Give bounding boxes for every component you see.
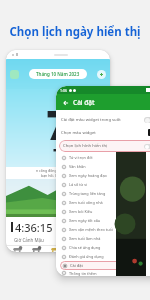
button[interactable]: Chọn lịch hình hiển thị xyxy=(59,140,150,152)
button[interactable]: Xem ngày hoàng đạo xyxy=(60,171,150,180)
button[interactable]: Con giáp xyxy=(12,246,23,252)
button[interactable]: Trùng tang liên táng xyxy=(60,189,150,198)
staticText: Xem tuổi xông nhà xyxy=(69,200,103,205)
button[interactable]: Xem tuổi làm nhà xyxy=(60,234,150,243)
staticText: Xem ngày hoàng đạo xyxy=(69,173,107,178)
button[interactable]: Lịch xyxy=(10,70,19,79)
staticText: Xem bói Kiều xyxy=(69,209,93,214)
button[interactable]: Chia sẻ ứng dụng xyxy=(60,243,150,252)
staticText: Tử vi trọn đời xyxy=(69,155,93,160)
button[interactable]: Con giáp xyxy=(50,246,61,252)
button[interactable]: Xem vận mệnh theo tuổi xyxy=(60,225,150,234)
staticText: bạn hối. lợp điều hay xyxy=(41,173,76,178)
button[interactable]: Xem tuổi xông nhà xyxy=(60,198,150,207)
button[interactable]: Thêm xyxy=(97,70,106,79)
staticText: Thông tin thêm xyxy=(69,271,97,276)
button[interactable]: Chọn màu widget xyxy=(56,126,150,139)
staticText: Xem ngày tốt xấu xyxy=(69,218,101,223)
staticText: Cài đặt xyxy=(73,98,95,107)
staticText: Lá số tử vi xyxy=(69,182,88,187)
staticText: Đánh giá ứng dụng xyxy=(69,254,104,259)
button[interactable]: Con giáp xyxy=(31,246,42,252)
staticText: Giờ Cảnh Mậu xyxy=(14,237,110,243)
staticText: Chọn màu widget xyxy=(61,130,148,136)
staticText: T xyxy=(53,143,63,165)
button[interactable]: Tháng 10 Năm 2023 xyxy=(29,69,87,79)
staticText: Xem tuổi làm nhà xyxy=(69,236,101,241)
staticText: n công đồng nghe điều hay xyxy=(36,168,81,173)
button[interactable]: Đánh giá ứng dụng xyxy=(60,252,150,261)
button[interactable]: Văn khấn xyxy=(60,162,150,171)
staticText: Tháng 10 Năm 2023 xyxy=(36,71,80,77)
staticText: Chọn lịch hình hiển thị xyxy=(63,143,144,149)
button[interactable]: Thông tin thêm xyxy=(60,270,150,276)
staticText: Trùng tang liên táng xyxy=(69,191,106,196)
button[interactable]: Xem ngày tốt xấu xyxy=(60,216,150,225)
button[interactable]: Xem bói Kiều xyxy=(60,207,150,216)
button[interactable]: Lá số tử vi xyxy=(60,180,150,189)
staticText: 4:36:15 xyxy=(15,220,53,235)
button[interactable]: Cài đặt xyxy=(60,261,140,270)
button[interactable]: Tử vi trọn đời xyxy=(60,153,150,162)
button[interactable]: Cài đặt màu widget trong suốt xyxy=(56,113,150,126)
staticText: Chọn lịch ngày hiển thị xyxy=(0,24,150,40)
button[interactable]: Quay lại xyxy=(61,98,70,107)
staticText: Cài đặt xyxy=(70,263,83,268)
staticText: Chia sẻ ứng dụng xyxy=(69,245,101,250)
staticText: 7 xyxy=(46,97,70,151)
staticText: Văn khấn xyxy=(69,164,86,169)
staticText: 1:06 xyxy=(60,88,67,93)
staticText: Xem vận mệnh theo tuổi xyxy=(69,227,113,232)
staticText: Cài đặt màu widget trong suốt xyxy=(61,117,144,123)
